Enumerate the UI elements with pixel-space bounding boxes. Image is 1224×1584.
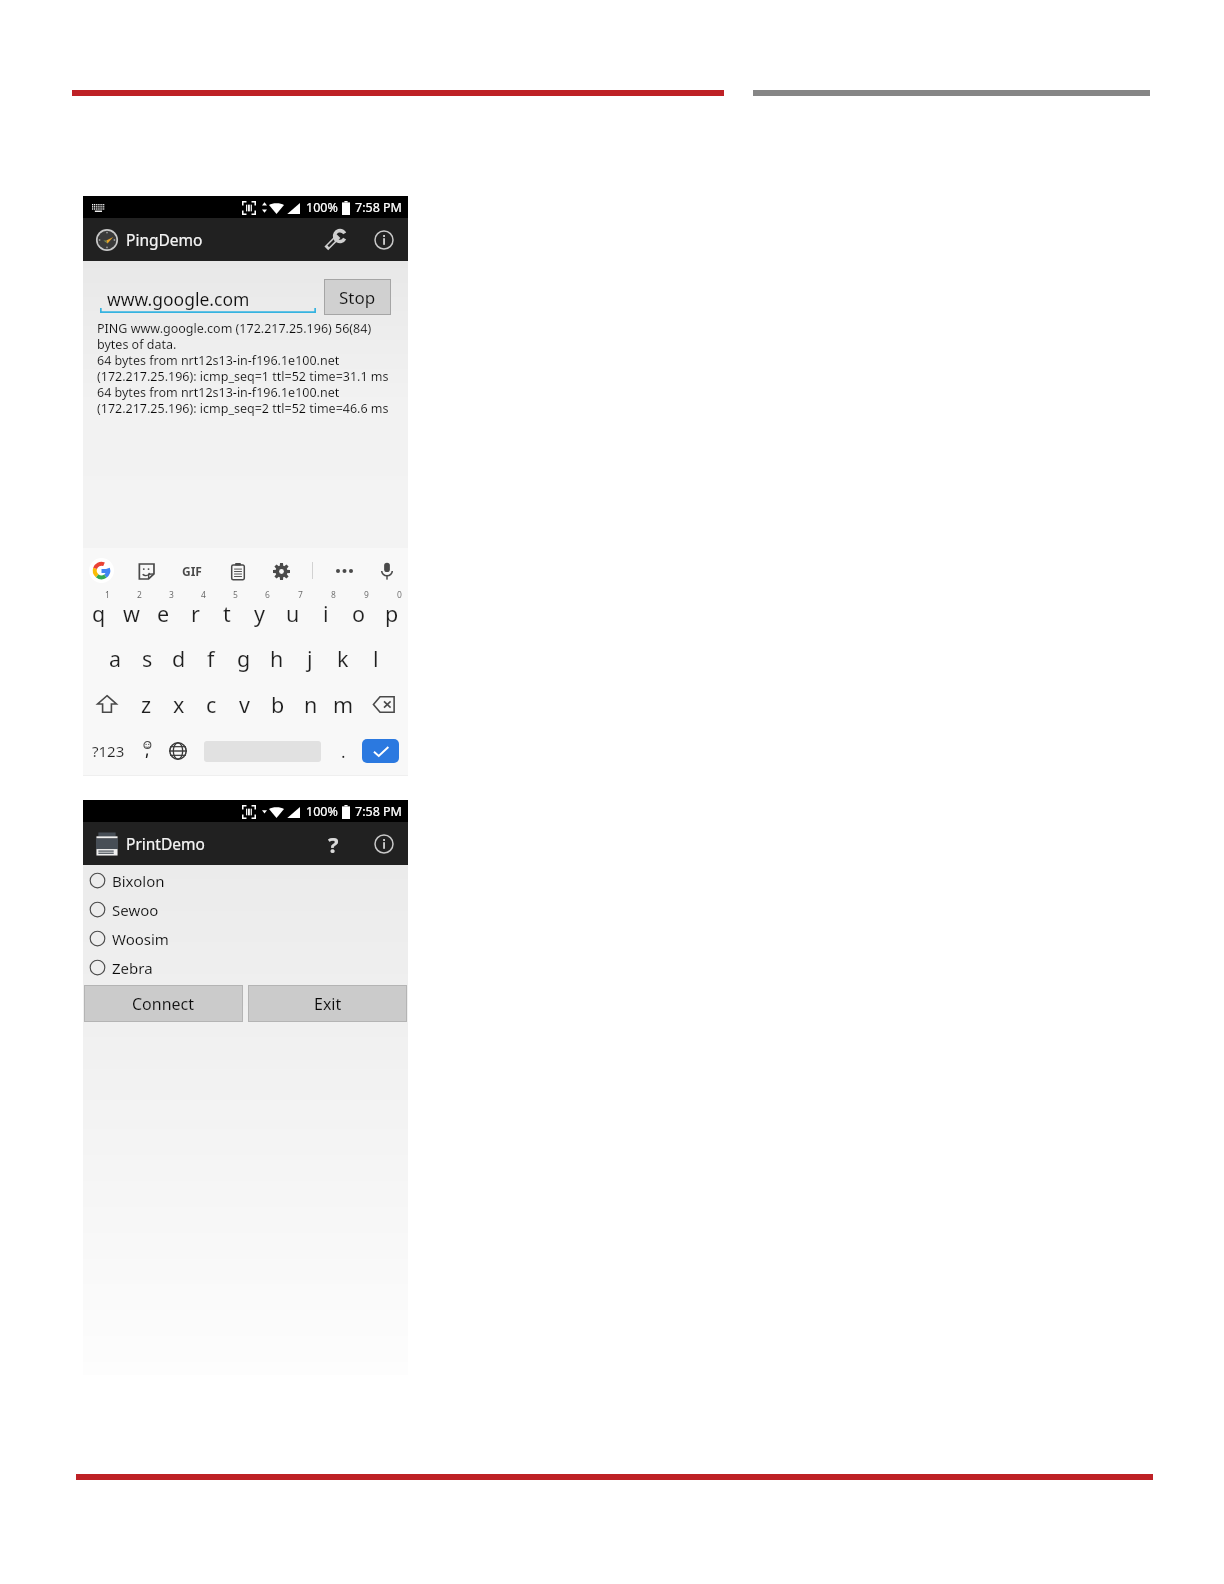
staticText: PingDemo xyxy=(126,229,203,250)
button[interactable]: l xyxy=(359,635,392,681)
button[interactable]: Info xyxy=(368,828,400,860)
button[interactable]: 4 xyxy=(179,586,211,635)
button[interactable]: z xyxy=(130,681,162,727)
staticText: ? xyxy=(328,829,339,859)
button[interactable]: GIF xyxy=(178,557,206,585)
staticText: 7:58 PM xyxy=(355,803,402,820)
button[interactable]: 3 xyxy=(147,586,179,635)
button[interactable]: j xyxy=(293,635,326,681)
button[interactable]: s xyxy=(131,635,163,681)
staticText: 100% xyxy=(306,199,338,216)
button[interactable]: Help xyxy=(316,827,350,861)
staticText: u xyxy=(286,599,300,628)
button[interactable]: 9 xyxy=(342,586,375,635)
button[interactable]: x xyxy=(162,681,195,727)
button[interactable]: c xyxy=(195,681,228,727)
staticText: e xyxy=(157,599,170,628)
button[interactable]: n xyxy=(294,681,327,727)
button[interactable]: Settings xyxy=(318,223,352,257)
staticText: 7:58 PM xyxy=(355,199,402,216)
button[interactable]: Space xyxy=(204,727,321,775)
button[interactable]: 1 xyxy=(83,586,115,635)
staticText: 100% xyxy=(306,803,338,820)
button[interactable]: v xyxy=(228,681,261,727)
staticText: z xyxy=(141,690,152,719)
staticText: d xyxy=(172,644,186,673)
staticText: 5 xyxy=(233,589,238,601)
staticText: j xyxy=(307,644,313,673)
staticText: 9 xyxy=(364,589,369,601)
button[interactable]: f xyxy=(195,635,227,681)
button[interactable]: . xyxy=(328,727,358,775)
staticText: Stop xyxy=(339,286,376,309)
staticText: 4 xyxy=(201,589,206,601)
staticText: c xyxy=(206,690,217,719)
staticText: n xyxy=(304,690,318,719)
staticText: 2 xyxy=(137,589,142,601)
button[interactable]: Sewoo xyxy=(83,895,408,924)
button[interactable]: Clipboard xyxy=(226,559,250,583)
button[interactable]: k xyxy=(326,635,359,681)
button[interactable]: Enter xyxy=(362,739,399,763)
button[interactable]: Stop xyxy=(324,279,391,315)
staticText: p xyxy=(385,599,399,628)
staticText: Exit xyxy=(314,993,342,1015)
staticText: m xyxy=(333,690,354,719)
button[interactable]: g xyxy=(227,635,260,681)
button[interactable]: 6 xyxy=(243,586,276,635)
staticText: q xyxy=(92,599,106,628)
button[interactable]: Shift xyxy=(83,681,130,727)
button[interactable]: Settings xyxy=(269,559,293,583)
staticText: t xyxy=(223,599,231,628)
button[interactable]: Zebra xyxy=(83,953,408,982)
staticText: b xyxy=(271,690,285,719)
staticText: Zebra xyxy=(112,958,153,978)
staticText: l xyxy=(373,644,379,673)
staticText: Woosim xyxy=(112,929,169,949)
button[interactable]: h xyxy=(260,635,293,681)
button[interactable]: m xyxy=(327,681,360,727)
button[interactable]: Backspace xyxy=(360,681,408,727)
button[interactable]: Connect xyxy=(84,985,243,1022)
staticText: 8 xyxy=(331,589,336,601)
button[interactable]: Bixolon xyxy=(83,866,408,895)
button[interactable]: More xyxy=(332,559,356,583)
button[interactable]: 2 xyxy=(115,586,147,635)
staticText: Bixolon xyxy=(112,871,165,891)
button[interactable]: d xyxy=(163,635,195,681)
staticText: Connect xyxy=(132,993,195,1015)
staticText: g xyxy=(237,644,251,673)
button[interactable]: Voice input xyxy=(375,559,399,583)
button[interactable]: Info xyxy=(368,224,400,256)
staticText: PING www.google.com (172.217.25.196) 56(… xyxy=(97,320,372,352)
button[interactable]: Exit xyxy=(248,985,407,1022)
staticText: a xyxy=(109,644,122,673)
staticText: 1 xyxy=(105,589,110,601)
staticText: x xyxy=(173,690,185,719)
button[interactable]: 8 xyxy=(309,586,342,635)
button[interactable]: Stickers xyxy=(134,559,158,583)
staticText: v xyxy=(239,690,250,719)
button[interactable]: Woosim xyxy=(83,924,408,953)
staticText: www.google.com xyxy=(107,287,250,311)
button[interactable]: Google xyxy=(89,558,114,583)
button[interactable]: b xyxy=(261,681,294,727)
staticText: o xyxy=(352,599,366,628)
staticText: GIF xyxy=(182,563,202,579)
button[interactable]: 0 xyxy=(375,586,408,635)
staticText: 64 bytes from nrt12s13-in-f196.1e100.net… xyxy=(97,384,389,416)
staticText: 64 bytes from nrt12s13-in-f196.1e100.net… xyxy=(97,352,389,384)
button[interactable]: Language xyxy=(159,727,197,775)
button[interactable] xyxy=(134,727,159,775)
staticText: 6 xyxy=(265,589,270,601)
staticText: PrintDemo xyxy=(126,833,205,854)
button[interactable]: 5 xyxy=(211,586,243,635)
button[interactable]: a xyxy=(99,635,131,681)
staticText: 0 xyxy=(397,589,402,601)
button[interactable]: 7 xyxy=(276,586,309,635)
staticText: k xyxy=(337,644,349,673)
staticText: 7 xyxy=(298,589,303,601)
button[interactable]: ?123 xyxy=(83,727,134,775)
staticText: w xyxy=(123,599,140,628)
staticText: . xyxy=(341,740,346,763)
